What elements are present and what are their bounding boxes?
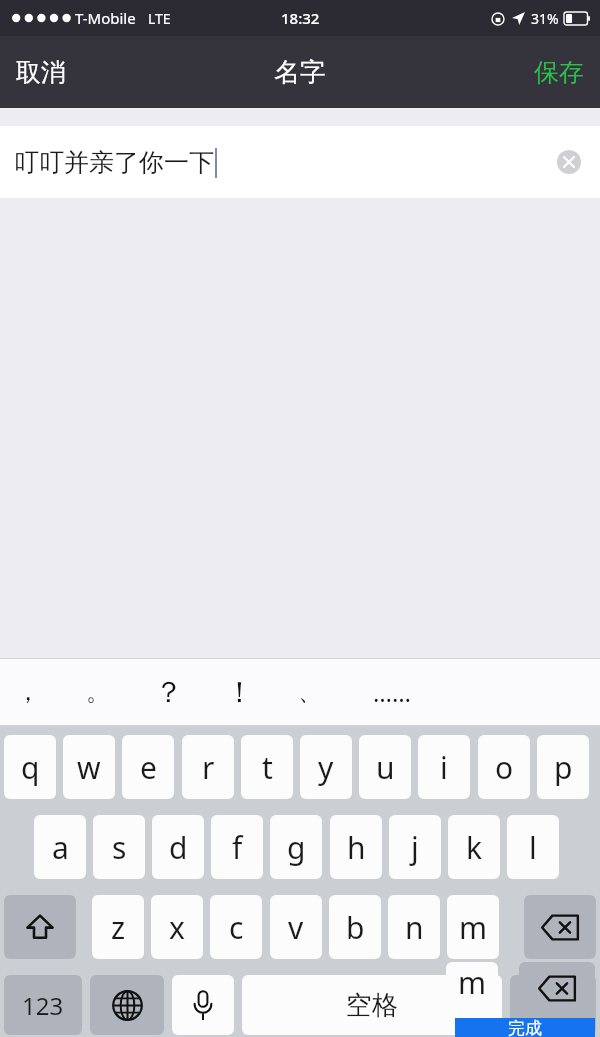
staticText: 取消 bbox=[16, 57, 66, 88]
staticText: f bbox=[232, 827, 243, 868]
button[interactable]: 。 bbox=[66, 658, 130, 726]
staticText: b bbox=[346, 907, 365, 948]
staticText: c bbox=[229, 907, 244, 948]
staticText: a bbox=[52, 827, 69, 868]
staticText: k bbox=[466, 827, 483, 868]
button[interactable]: Change keyboard bbox=[90, 975, 164, 1035]
button[interactable]: z bbox=[92, 895, 144, 959]
button[interactable]: ？ bbox=[136, 658, 200, 726]
staticText: g bbox=[287, 827, 306, 868]
staticText: m bbox=[459, 907, 488, 948]
staticText: 名字 bbox=[274, 56, 326, 89]
button[interactable]: t bbox=[241, 735, 293, 799]
button[interactable]: ！ bbox=[207, 658, 271, 726]
button[interactable]: Dictation bbox=[172, 975, 234, 1035]
staticText: …… bbox=[373, 676, 411, 709]
button[interactable]: Shift bbox=[4, 895, 76, 959]
staticText: l bbox=[529, 827, 537, 868]
staticText: 、 bbox=[298, 677, 322, 707]
button[interactable]: 保存 bbox=[518, 47, 600, 98]
button[interactable]: o bbox=[478, 735, 530, 799]
button[interactable]: m bbox=[447, 895, 499, 959]
button[interactable]: j bbox=[389, 815, 441, 879]
staticText: y bbox=[318, 747, 334, 788]
staticText: 。 bbox=[86, 677, 110, 707]
button[interactable]: v bbox=[270, 895, 322, 959]
button[interactable]: 取消 bbox=[0, 47, 82, 98]
button[interactable]: p bbox=[537, 735, 589, 799]
button[interactable]: k bbox=[448, 815, 500, 879]
button[interactable]: …… bbox=[360, 658, 424, 726]
staticText: p bbox=[554, 747, 573, 788]
button[interactable]: 空格 bbox=[242, 975, 502, 1035]
staticText: 18:32 bbox=[281, 8, 320, 28]
staticText: 31% bbox=[531, 9, 559, 28]
staticText: ？ bbox=[154, 674, 183, 711]
staticText: i bbox=[440, 747, 448, 788]
staticText: x bbox=[169, 907, 185, 948]
button[interactable]: g bbox=[270, 815, 322, 879]
staticText: u bbox=[376, 747, 395, 788]
button[interactable]: n bbox=[388, 895, 440, 959]
staticText: h bbox=[347, 827, 366, 868]
staticText: 保存 bbox=[534, 57, 584, 88]
button[interactable]: c bbox=[210, 895, 262, 959]
button[interactable]: 叮叮并亲了你一下 bbox=[0, 126, 600, 198]
button[interactable]: ， bbox=[0, 658, 60, 726]
button[interactable]: 、 bbox=[278, 658, 342, 726]
staticText: r bbox=[202, 747, 215, 788]
staticText: z bbox=[111, 907, 126, 948]
button[interactable]: h bbox=[330, 815, 382, 879]
button[interactable]: 123 bbox=[4, 975, 82, 1035]
button[interactable]: e bbox=[122, 735, 174, 799]
button[interactable]: l bbox=[507, 815, 559, 879]
staticText: 叮叮并亲了你一下 bbox=[14, 147, 214, 178]
staticText: e bbox=[140, 747, 157, 788]
staticText: t bbox=[262, 747, 273, 788]
button[interactable]: Backspace bbox=[524, 895, 596, 959]
staticText: T-Mobile bbox=[75, 8, 136, 28]
button[interactable]: r bbox=[182, 735, 234, 799]
staticText: d bbox=[169, 827, 188, 868]
staticText: s bbox=[112, 827, 127, 868]
staticText: LTE bbox=[148, 9, 171, 28]
staticText: n bbox=[405, 907, 424, 948]
staticText: ， bbox=[16, 677, 40, 707]
button[interactable]: f bbox=[211, 815, 263, 879]
staticText: j bbox=[411, 827, 419, 868]
button[interactable]: w bbox=[63, 735, 115, 799]
staticText: 123 bbox=[22, 989, 64, 1022]
button[interactable]: x bbox=[151, 895, 203, 959]
button[interactable]: a bbox=[34, 815, 86, 879]
staticText: w bbox=[77, 747, 101, 788]
button[interactable]: d bbox=[152, 815, 204, 879]
staticText: o bbox=[495, 747, 514, 788]
button[interactable]: s bbox=[93, 815, 145, 879]
staticText: q bbox=[21, 747, 40, 788]
button[interactable]: i bbox=[418, 735, 470, 799]
button[interactable]: u bbox=[359, 735, 411, 799]
staticText: 空格 bbox=[346, 989, 398, 1022]
staticText: 完成 bbox=[508, 1018, 542, 1037]
button[interactable]: q bbox=[4, 735, 56, 799]
staticText: ！ bbox=[225, 674, 254, 711]
button[interactable]: Clear text bbox=[554, 147, 584, 177]
button[interactable]: b bbox=[329, 895, 381, 959]
button[interactable] bbox=[510, 975, 596, 1035]
staticText: v bbox=[288, 907, 304, 948]
staticText: m bbox=[458, 962, 487, 1003]
button[interactable]: y bbox=[300, 735, 352, 799]
